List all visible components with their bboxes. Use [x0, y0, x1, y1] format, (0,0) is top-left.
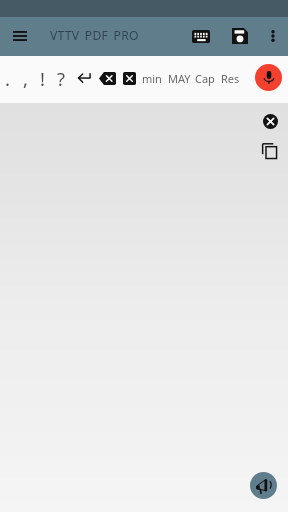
button[interactable]: Cap — [191, 64, 219, 92]
button[interactable]: Open navigation menu — [8, 24, 32, 48]
button[interactable]: . — [0, 58, 20, 99]
button[interactable]: Res — [216, 64, 244, 92]
staticText: MAY — [168, 71, 191, 86]
button[interactable]: Microphone — [255, 64, 282, 91]
button[interactable]: Backspace — [94, 65, 120, 91]
button[interactable]: , — [12, 58, 38, 99]
staticText: , — [23, 66, 28, 91]
staticText: Res — [221, 71, 240, 86]
button[interactable]: More options — [259, 22, 287, 50]
button[interactable]: ? — [48, 58, 74, 99]
button[interactable]: VTTV PDF PRO — [50, 25, 139, 45]
button[interactable]: Clear all — [116, 65, 142, 91]
staticText: Cap — [195, 71, 215, 86]
button[interactable]: ! — [29, 58, 55, 99]
button[interactable]: Read aloud — [250, 472, 277, 499]
staticText: . — [5, 66, 10, 91]
button[interactable]: MAY — [165, 64, 193, 92]
staticText: ? — [57, 66, 66, 91]
staticText: min — [142, 71, 162, 86]
button[interactable]: Save — [226, 22, 254, 50]
button[interactable]: Keyboard — [187, 22, 215, 50]
button[interactable]: Clear text — [258, 109, 282, 133]
button[interactable]: New line — [71, 64, 97, 90]
staticText: VTTV PDF PRO — [50, 27, 139, 44]
staticText: ! — [40, 66, 45, 91]
button[interactable]: Copy — [258, 139, 282, 163]
button[interactable]: min — [138, 64, 166, 92]
